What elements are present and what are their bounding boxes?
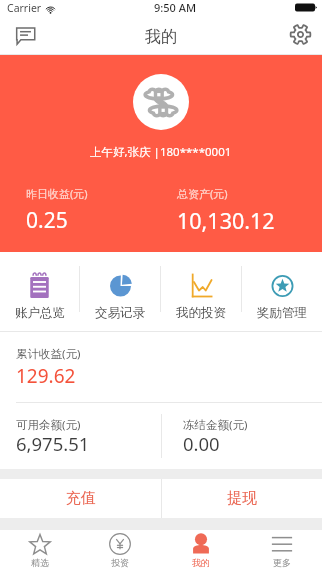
button[interactable]: 可用余额(元) bbox=[0, 403, 161, 469]
button[interactable]: 投资 bbox=[80, 530, 160, 572]
button[interactable]: 充值 bbox=[0, 479, 161, 518]
staticText: 6,975.51 bbox=[16, 431, 90, 456]
button[interactable]: 冻结金额(元) bbox=[161, 403, 322, 469]
staticText: 我的 bbox=[192, 557, 210, 568]
staticText: 10,130.12 bbox=[177, 206, 275, 235]
staticText: 我的 bbox=[145, 27, 177, 47]
staticText: 昨日收益(元) bbox=[26, 186, 88, 201]
button[interactable]: 交易记录 bbox=[80, 252, 160, 332]
button[interactable]: Profile photo bbox=[133, 74, 189, 130]
staticText: 冻结金额(元) bbox=[183, 417, 248, 433]
staticText: 充值 bbox=[66, 489, 96, 508]
staticText: 账户总览 bbox=[15, 305, 65, 321]
button[interactable]: 我的 bbox=[160, 530, 241, 572]
button[interactable]: Messages bbox=[10, 23, 40, 53]
button[interactable]: 精选 bbox=[0, 530, 80, 572]
button[interactable]: 我的投资 bbox=[161, 252, 241, 332]
button[interactable]: 累计收益(元) bbox=[0, 332, 322, 403]
button[interactable]: 更多 bbox=[241, 530, 322, 572]
button[interactable]: Settings bbox=[285, 23, 315, 53]
button[interactable]: 账户总览 bbox=[0, 252, 79, 332]
staticText: 精选 bbox=[31, 557, 49, 568]
staticText: Carrier bbox=[7, 1, 42, 15]
staticText: 我的投资 bbox=[176, 305, 226, 321]
staticText: 更多 bbox=[273, 557, 291, 568]
staticText: 0.25 bbox=[26, 206, 68, 235]
staticText: 奖励管理 bbox=[257, 305, 307, 321]
staticText: 累计收益(元) bbox=[16, 346, 81, 362]
staticText: 9:50 AM bbox=[154, 0, 197, 15]
staticText: 0.00 bbox=[183, 431, 220, 456]
staticText: 提现 bbox=[227, 489, 257, 508]
staticText: 总资产(元) bbox=[177, 186, 228, 201]
staticText: 上午好,张庆 |180****0001 bbox=[90, 144, 232, 160]
staticText: 投资 bbox=[111, 557, 129, 568]
staticText: 可用余额(元) bbox=[16, 417, 81, 433]
button[interactable]: 提现 bbox=[161, 479, 322, 518]
staticText: 129.62 bbox=[16, 363, 76, 389]
button[interactable]: 奖励管理 bbox=[242, 252, 322, 332]
staticText: 交易记录 bbox=[95, 305, 145, 321]
